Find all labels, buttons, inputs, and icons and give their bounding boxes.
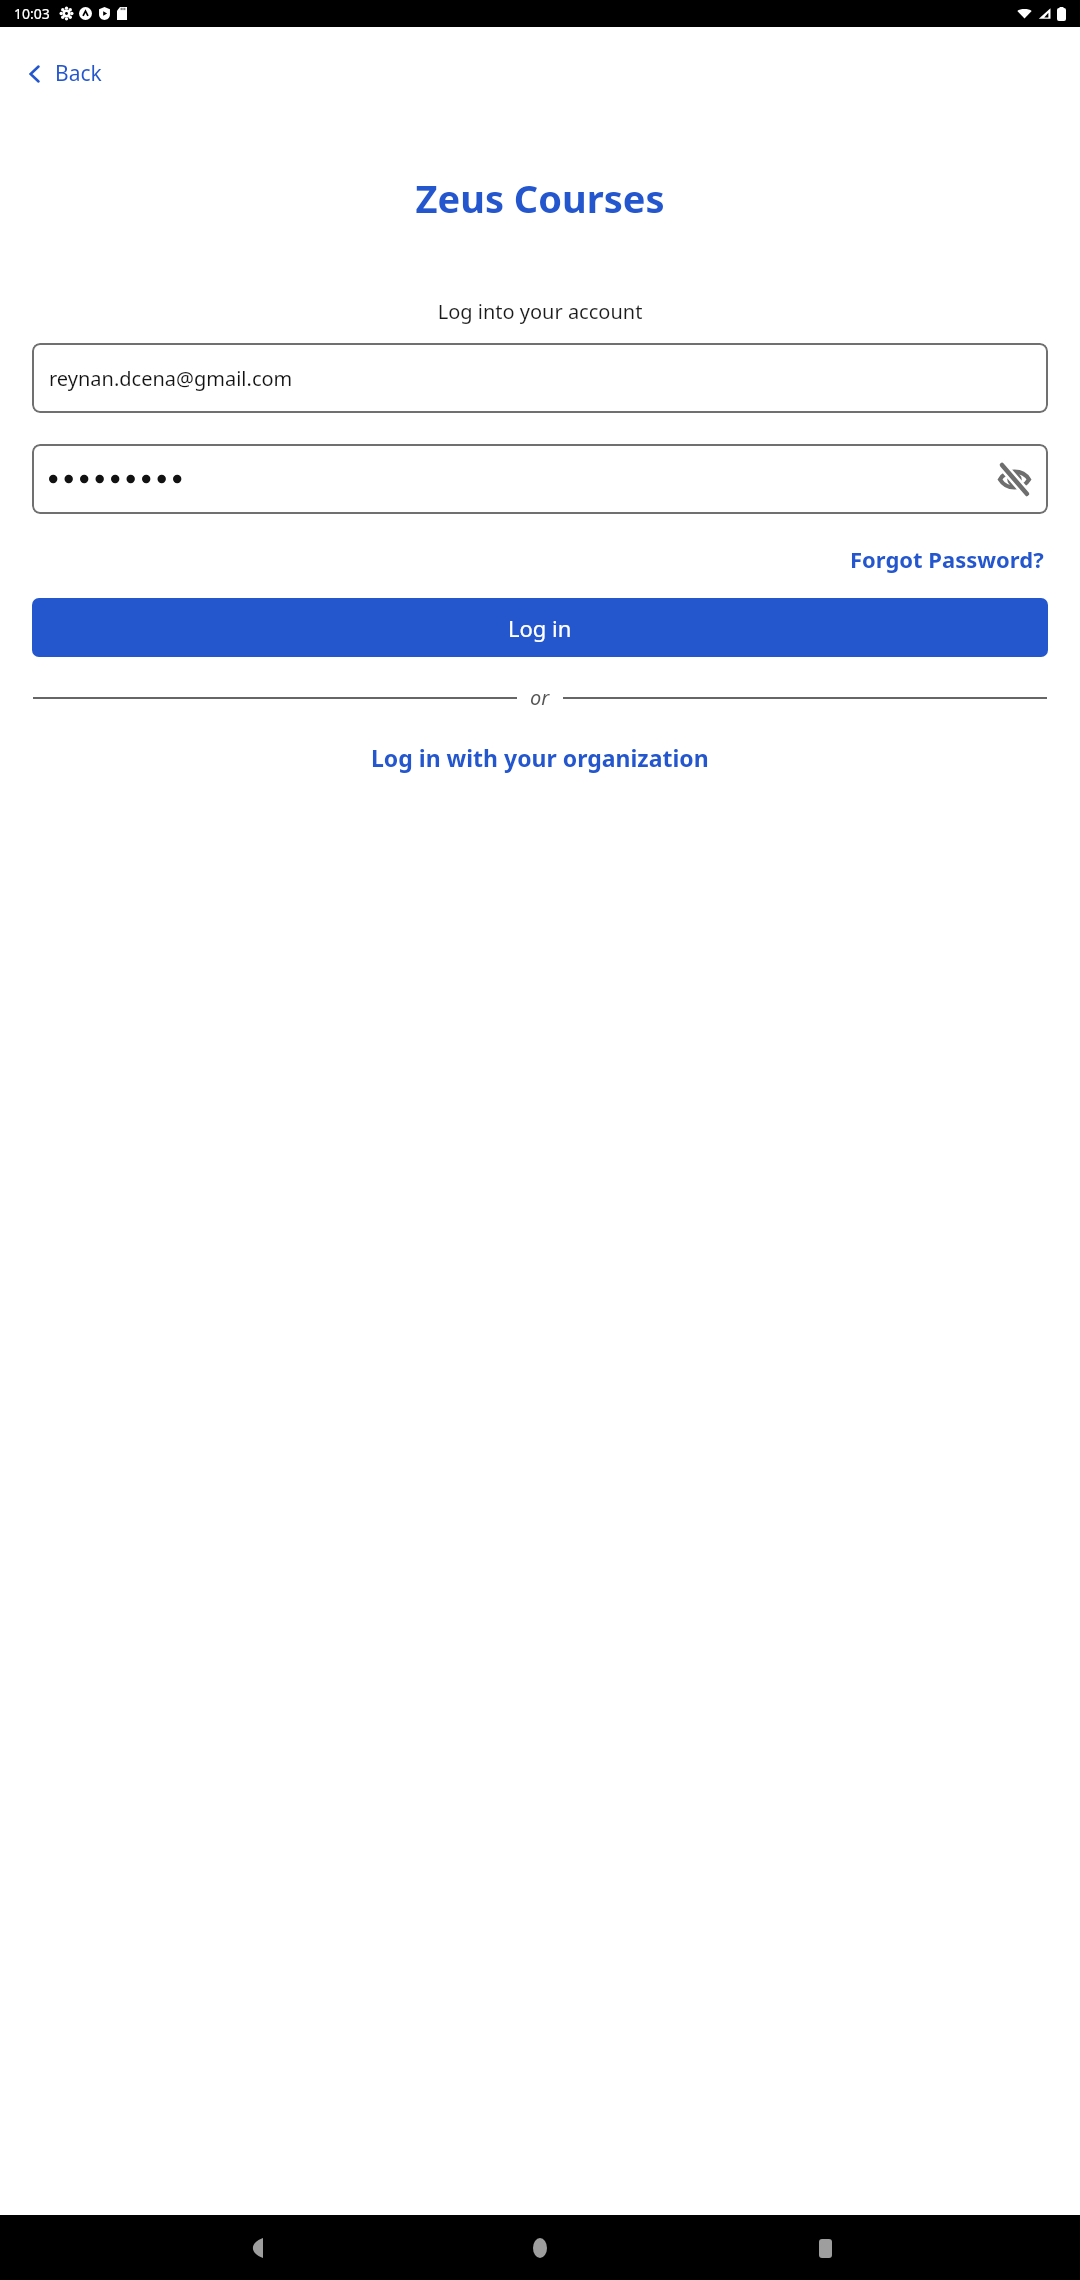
staticText: reynan.dcena@gmail.com: [49, 365, 293, 392]
button[interactable]: Log in with your organization: [363, 737, 717, 778]
staticText: Log in with your organization: [371, 742, 709, 773]
button[interactable]: Back: [225, 2218, 285, 2278]
staticText: Log in: [508, 613, 572, 643]
button[interactable]: Back: [14, 53, 112, 94]
button[interactable]: Recent apps: [795, 2218, 855, 2278]
staticText: or: [530, 684, 550, 711]
staticText: Zeus Courses: [0, 172, 1080, 224]
button[interactable]: Forgot Password?: [846, 540, 1048, 578]
button[interactable]: Show password: [992, 457, 1036, 501]
staticText: Forgot Password?: [850, 544, 1044, 574]
staticText: Log into your account: [0, 298, 1080, 325]
staticText: Back: [55, 59, 102, 88]
button[interactable]: Show password: [32, 444, 1048, 514]
button[interactable]: Home: [510, 2218, 570, 2278]
button[interactable]: reynan.dcena@gmail.com: [32, 343, 1048, 413]
staticText: 10:03: [14, 4, 50, 23]
button[interactable]: Log in: [32, 598, 1048, 657]
